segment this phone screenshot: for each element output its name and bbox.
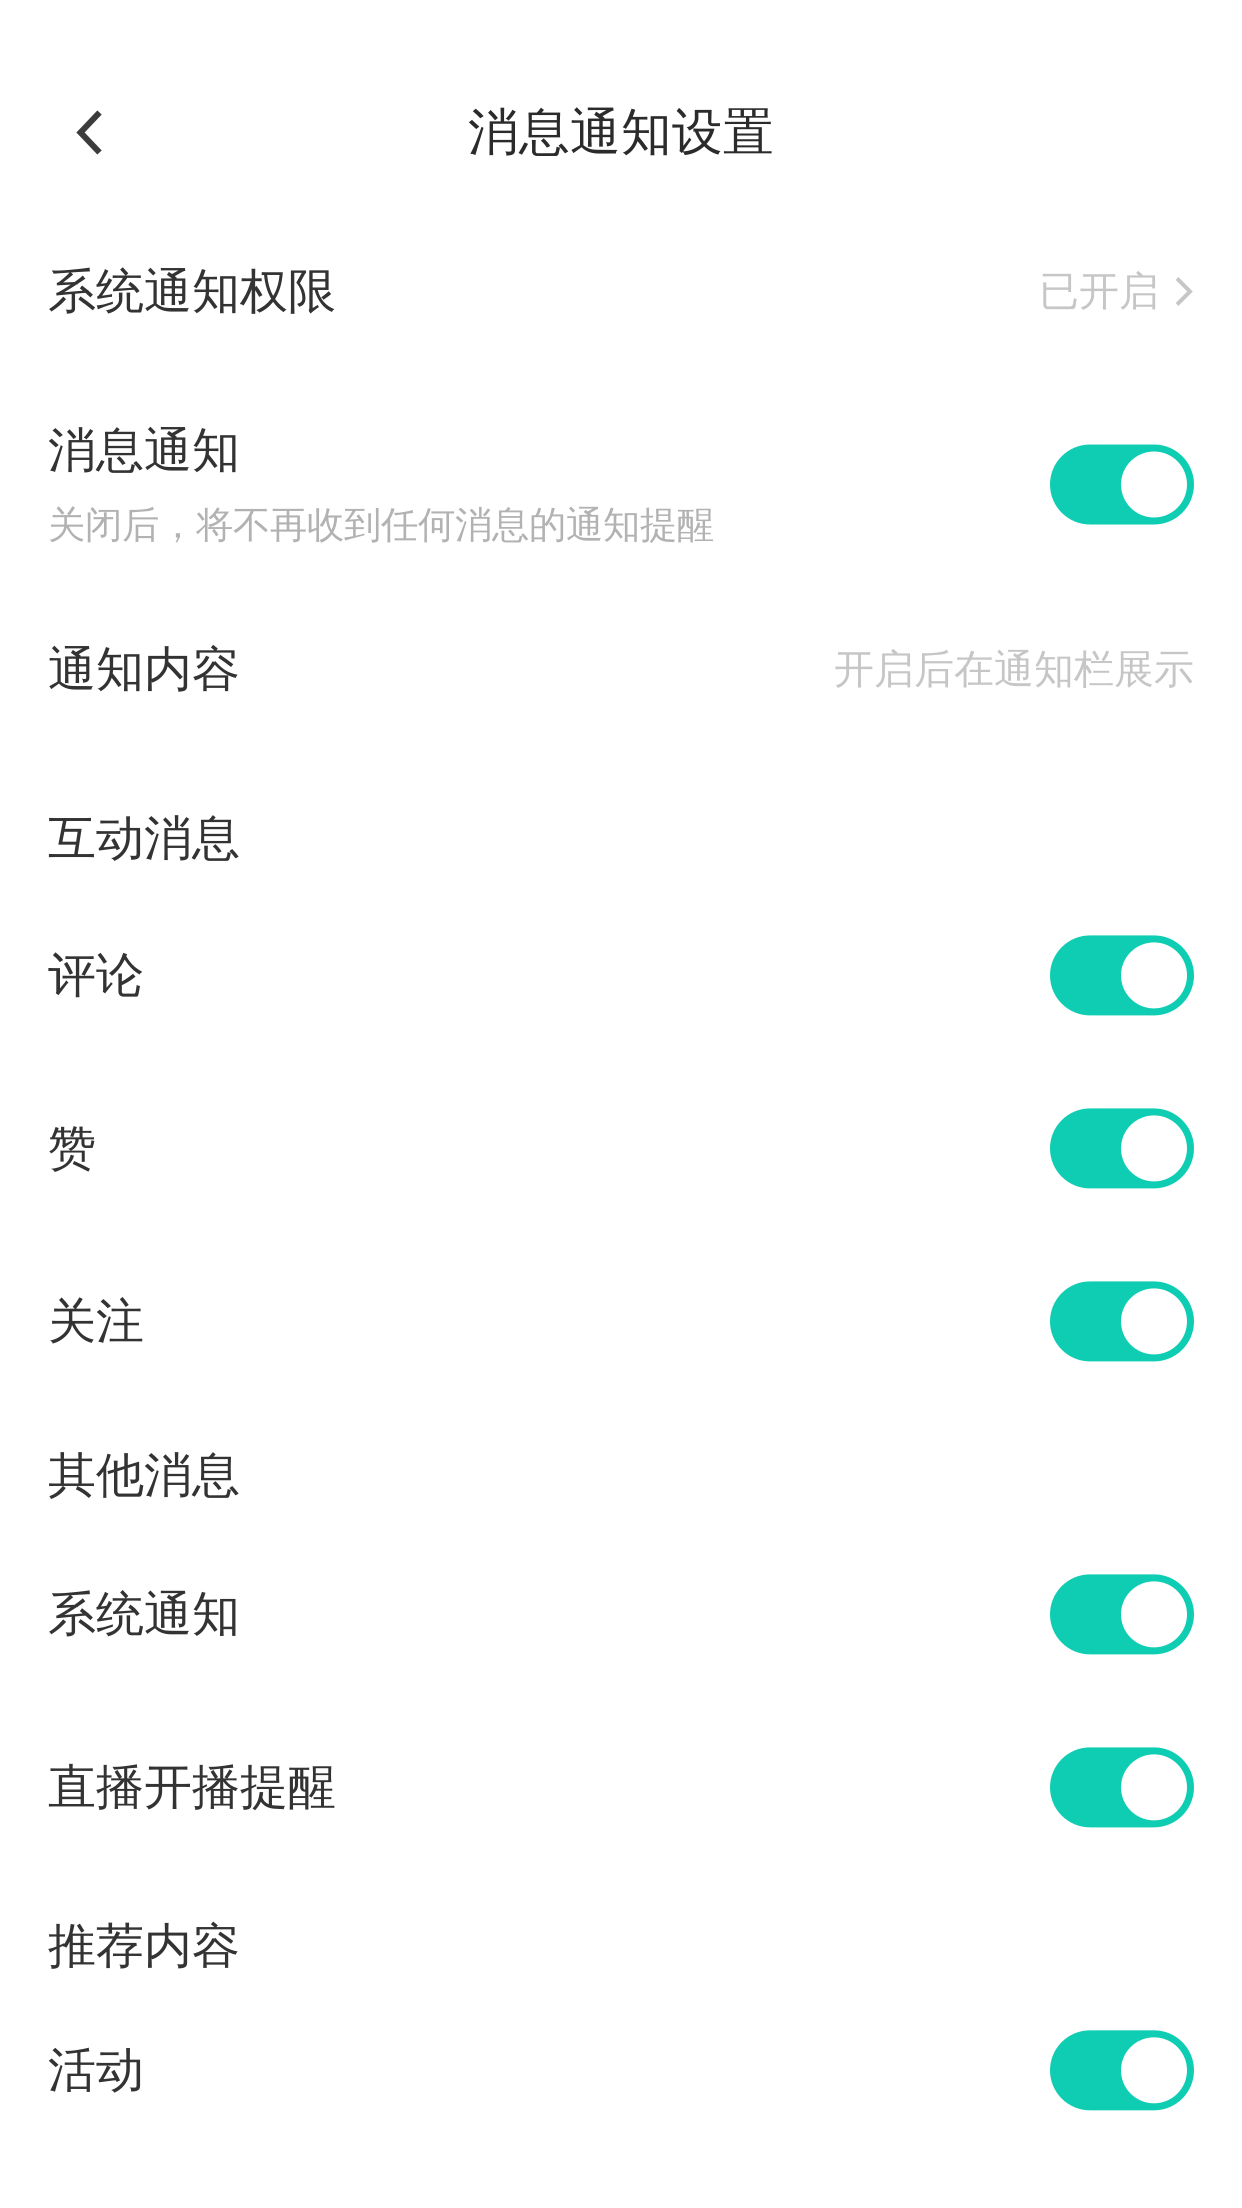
staticText: 已开启 — [1039, 267, 1159, 316]
button[interactable]: 直播开播提醒 — [0, 1701, 1242, 1874]
button[interactable]: 活动 — [0, 1984, 1242, 2157]
staticText: 消息通知设置 — [468, 101, 774, 164]
staticText: 关闭后，将不再收到任何消息的通知提醒 — [48, 502, 714, 548]
button[interactable]: 评论 — [0, 889, 1242, 1062]
button[interactable]: 系统通知 — [0, 1528, 1242, 1701]
staticText: 消息通知 — [48, 421, 240, 480]
staticText: 互动消息 — [48, 809, 240, 868]
staticText: 系统通知 — [48, 1585, 240, 1644]
button[interactable]: 返回 — [0, 78, 138, 186]
staticText: 评论 — [48, 946, 144, 1005]
staticText: 开启后在通知栏展示 — [834, 645, 1194, 694]
button[interactable]: 关注 — [0, 1235, 1242, 1408]
button[interactable]: 系统通知权限 — [0, 205, 1242, 378]
button[interactable]: 消息通知 — [0, 378, 1242, 591]
staticText: 赞 — [48, 1119, 96, 1178]
staticText: 推荐内容 — [48, 1917, 240, 1976]
staticText: 通知内容 — [48, 640, 240, 699]
staticText: 活动 — [48, 2041, 144, 2100]
staticText: 关注 — [48, 1292, 144, 1351]
staticText: 其他消息 — [48, 1446, 240, 1505]
staticText: 直播开播提醒 — [48, 1758, 336, 1817]
button[interactable]: 赞 — [0, 1062, 1242, 1235]
staticText: 系统通知权限 — [48, 262, 336, 321]
